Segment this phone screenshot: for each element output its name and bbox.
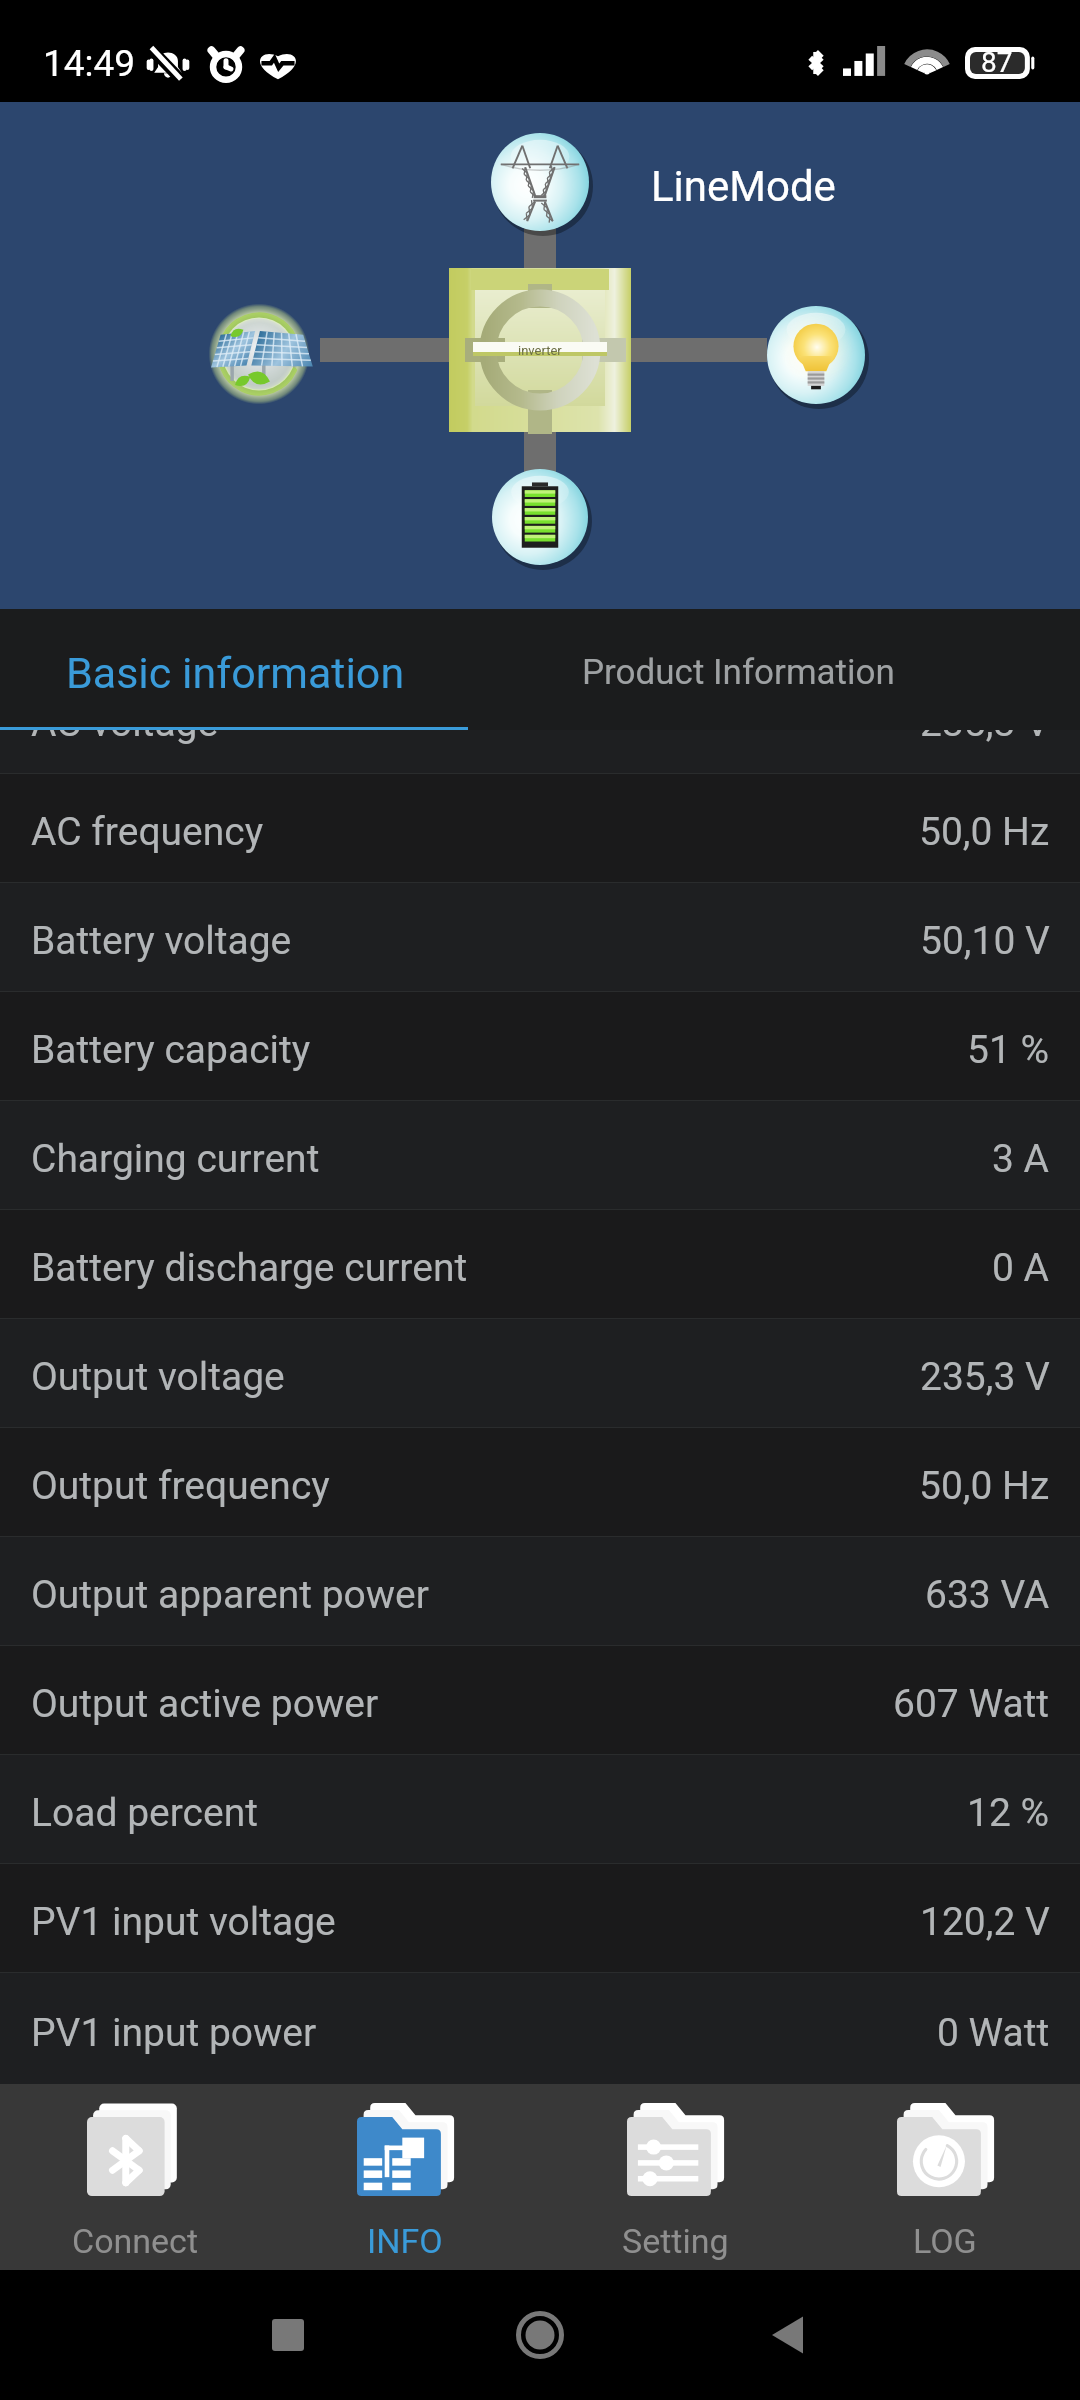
button[interactable]: Battery voltage — [0, 883, 1080, 991]
staticText: Battery voltage — [31, 918, 292, 964]
staticText: 0 Watt — [937, 2010, 1050, 2056]
staticText: 50,0 Hz — [919, 809, 1050, 855]
staticText: 14:49 — [43, 42, 136, 85]
button[interactable]: Battery capacity — [0, 992, 1080, 1100]
staticText: LineMode — [651, 162, 836, 211]
staticText: 235,3 V — [920, 700, 1050, 746]
staticText: AC voltage — [31, 700, 219, 746]
staticText: 633 VA — [925, 1572, 1050, 1618]
staticText: 235,3 V — [920, 1354, 1050, 1400]
staticText: Output frequency — [31, 1463, 330, 1509]
staticText: 120,2 V — [920, 1899, 1050, 1945]
staticText: PV1 input power — [31, 2010, 317, 2056]
button[interactable]: Output apparent power — [0, 1537, 1080, 1645]
staticText: PV1 input voltage — [31, 1899, 336, 1945]
staticText: inverter — [518, 343, 562, 358]
staticText: Charging current — [31, 1136, 320, 1182]
button[interactable]: Settings — [540, 2084, 810, 2270]
staticText: Output active power — [31, 1681, 379, 1727]
staticText: Battery discharge current — [31, 1245, 468, 1291]
button[interactable]: PV1 input power — [0, 1973, 1080, 2084]
button[interactable]: Output active power — [0, 1646, 1080, 1754]
button[interactable]: Connect to device — [0, 2084, 270, 2270]
staticText: Output voltage — [31, 1354, 285, 1400]
staticText: 607 Watt — [893, 1681, 1050, 1727]
staticText: INFO — [367, 2221, 443, 2261]
button[interactable]: Product Information — [540, 609, 1080, 730]
staticText: Product Information — [582, 652, 895, 693]
staticText: Basic information — [66, 648, 405, 698]
staticText: 3 A — [992, 1136, 1050, 1182]
button[interactable]: Output voltage — [0, 1319, 1080, 1427]
button[interactable]: Charging current — [0, 1101, 1080, 1209]
staticText: 87 — [981, 46, 1013, 78]
staticText: AC frequency — [31, 809, 264, 855]
staticText: 50,10 V — [920, 918, 1050, 964]
button[interactable]: AC frequency — [0, 774, 1080, 882]
staticText: Load percent — [31, 1790, 258, 1836]
staticText: Output apparent power — [31, 1572, 429, 1618]
button[interactable]: Output frequency — [0, 1428, 1080, 1536]
button[interactable]: Basic information — [0, 609, 540, 730]
button[interactable]: AC voltage — [0, 665, 1080, 773]
staticText: 12 % — [967, 1790, 1050, 1836]
button[interactable]: Load percent — [0, 1755, 1080, 1863]
staticText: Setting — [622, 2221, 729, 2261]
staticText: Battery capacity — [31, 1027, 311, 1073]
staticText: Connect — [72, 2221, 199, 2261]
staticText: 50,0 Hz — [919, 1463, 1050, 1509]
button[interactable]: Log — [810, 2084, 1080, 2270]
button[interactable]: Information — [270, 2084, 540, 2270]
staticText: 51 % — [967, 1027, 1050, 1073]
button[interactable]: Battery discharge current — [0, 1210, 1080, 1318]
staticText: LOG — [913, 2221, 977, 2261]
staticText: 0 A — [992, 1245, 1050, 1291]
button[interactable]: PV1 input voltage — [0, 1864, 1080, 1972]
